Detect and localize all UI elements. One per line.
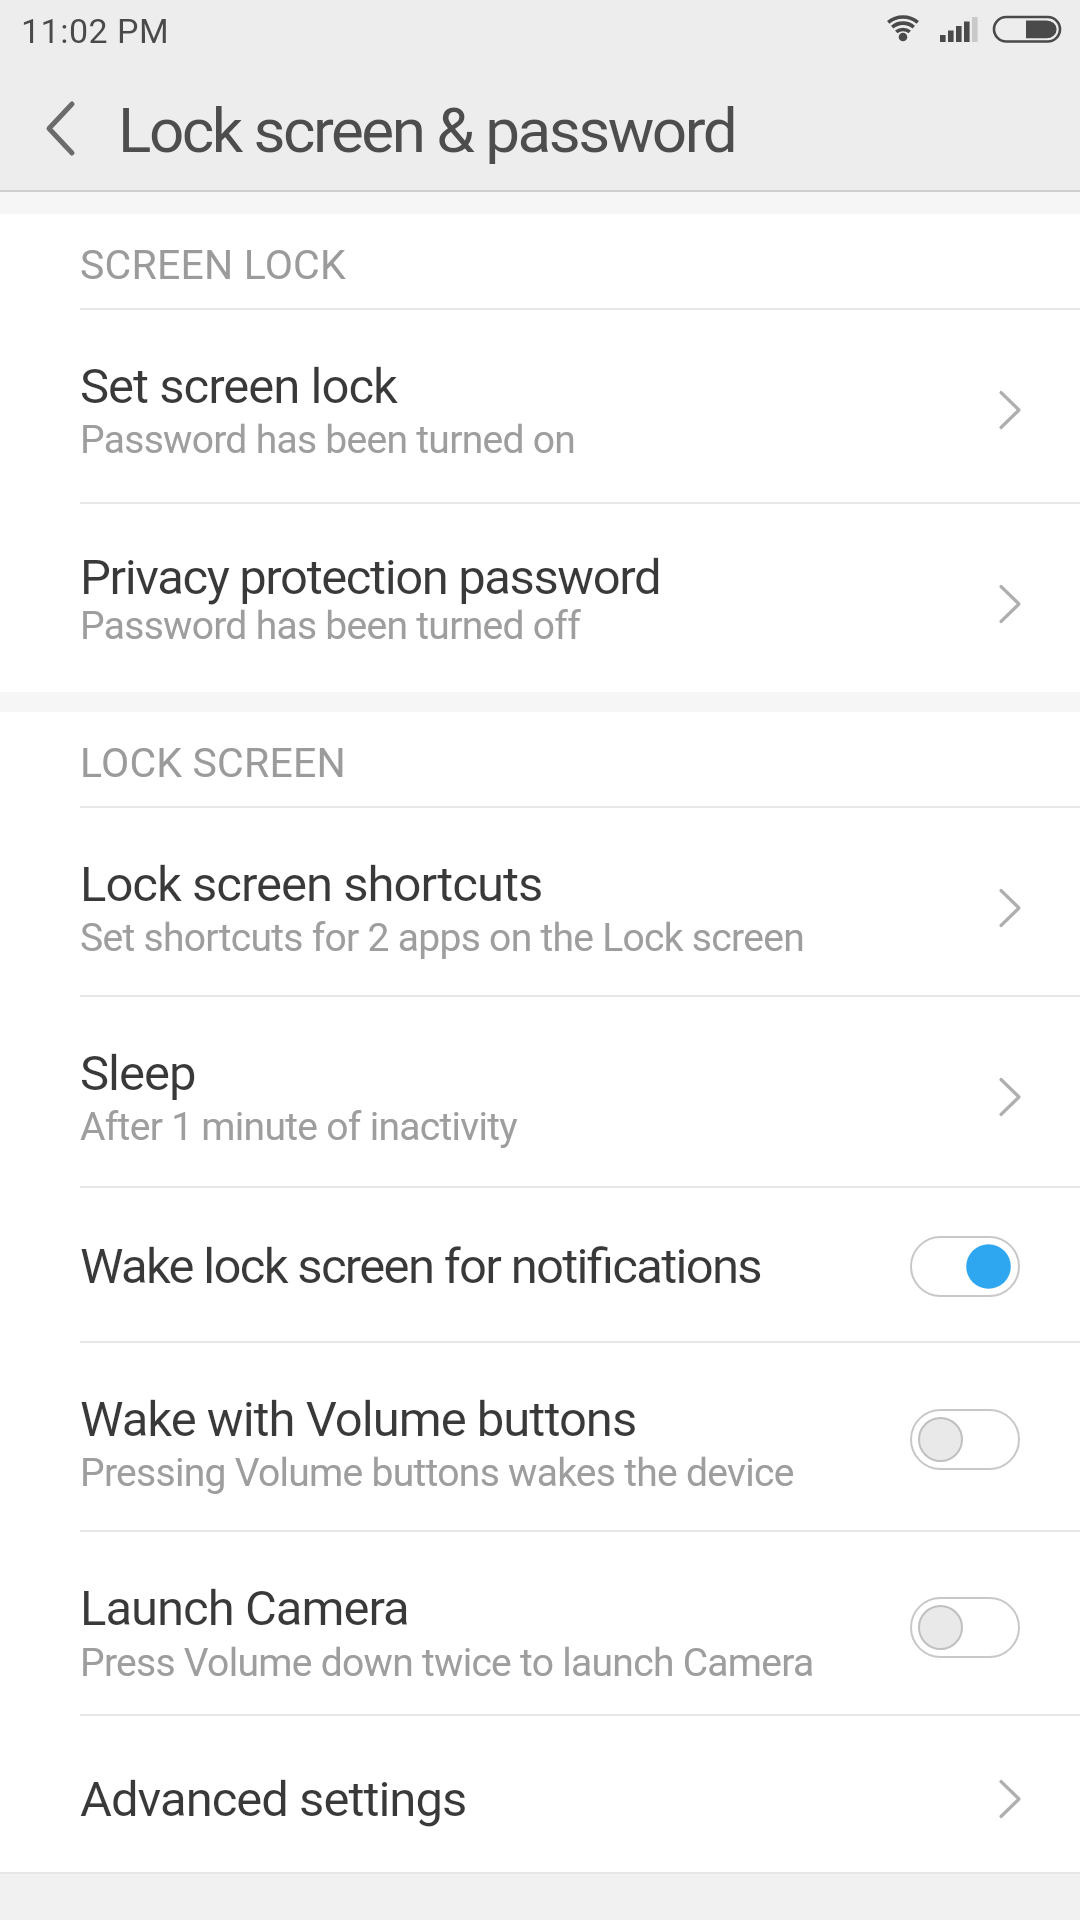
staticText: Password has been turned on (80, 417, 576, 463)
button[interactable]: Privacy protection password (0, 504, 1080, 692)
button[interactable] (20, 85, 100, 175)
staticText: SCREEN LOCK (80, 241, 346, 289)
button[interactable]: Lock screen shortcuts (0, 808, 1080, 995)
staticText: 11:02 PM (21, 11, 170, 51)
button[interactable]: Wake with Volume buttons (0, 1343, 1080, 1530)
button[interactable]: Sleep (0, 997, 1080, 1186)
staticText: Press Volume down twice to launch Camera (80, 1640, 814, 1686)
staticText: Wake lock screen for notifications (80, 1238, 761, 1295)
staticText: Lock screen & password (118, 94, 736, 167)
staticText: Set shortcuts for 2 apps on the Lock scr… (80, 915, 804, 961)
staticText: Launch Camera (80, 1580, 409, 1637)
staticText: After 1 minute of inactivity (80, 1104, 518, 1150)
button[interactable]: Wake lock screen for notifications (0, 1188, 1080, 1341)
staticText: Pressing Volume buttons wakes the device (80, 1450, 794, 1496)
staticText: Set screen lock (80, 358, 397, 415)
staticText: Lock screen shortcuts (80, 856, 543, 913)
staticText: LOCK SCREEN (80, 739, 346, 787)
staticText: Password has been turned off (80, 603, 581, 649)
staticText: Privacy protection password (80, 549, 661, 606)
button[interactable]: Set screen lock (0, 310, 1080, 502)
staticText: Advanced settings (80, 1771, 467, 1828)
button[interactable]: Advanced settings (0, 1716, 1080, 1872)
button[interactable]: Launch Camera (0, 1532, 1080, 1714)
staticText: Wake with Volume buttons (80, 1391, 637, 1448)
staticText: Sleep (80, 1045, 196, 1102)
